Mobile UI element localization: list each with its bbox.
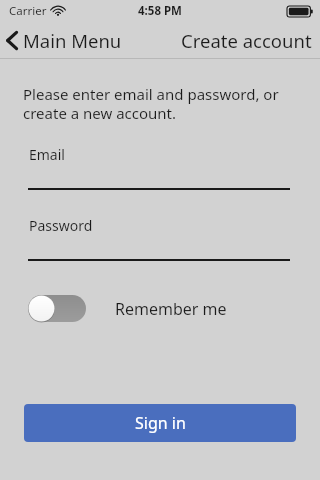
staticText: Sign in xyxy=(135,412,186,434)
staticText: Password xyxy=(29,216,93,235)
staticText: Email xyxy=(29,145,65,164)
other: Back xyxy=(6,31,18,50)
staticText: Main Menu xyxy=(23,28,122,53)
staticText: 4:58 PM xyxy=(138,3,182,19)
staticText: Carrier xyxy=(9,3,47,19)
staticText: Create account xyxy=(181,28,312,53)
staticText: Remember me xyxy=(115,298,227,320)
button[interactable]: Create account xyxy=(173,23,320,58)
button[interactable]: Remember me toggle xyxy=(28,295,86,322)
button[interactable]: Sign in xyxy=(24,404,296,442)
button[interactable]: Back xyxy=(0,24,132,57)
staticText: Please enter email and password, or crea… xyxy=(23,84,279,123)
